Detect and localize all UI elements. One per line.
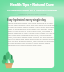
- staticText: Stay hydrated every single day: [7, 18, 46, 21]
- staticText: Health Tips • Natural Cure: [10, 2, 54, 7]
- staticText: Staying hydrated keeps your body working…: [7, 22, 57, 46]
- button[interactable]: Health Tips • Natural Cure: [0, 0, 64, 72]
- other: Plant illustration: [0, 0, 64, 72]
- staticText: Evidence based daily routine: [18, 13, 47, 16]
- staticText: 10 Wellness Habits for a Healthier Lifes…: [7, 8, 57, 11]
